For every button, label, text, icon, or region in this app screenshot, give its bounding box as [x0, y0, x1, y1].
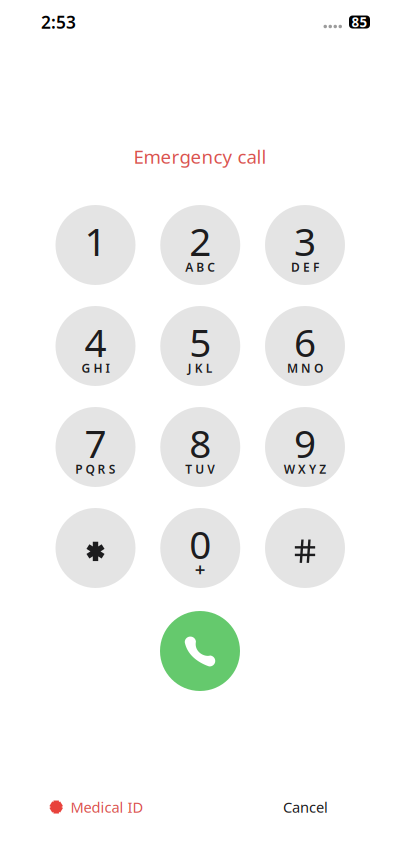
staticText: Q	[85, 461, 94, 477]
staticText: A	[185, 259, 193, 275]
button[interactable]: 7	[55, 407, 135, 487]
button[interactable]: Cancel	[283, 797, 328, 817]
button[interactable]: Medical ID	[50, 797, 143, 817]
staticText: F	[313, 259, 319, 275]
staticText: C	[207, 259, 215, 275]
staticText: T	[185, 461, 192, 477]
button[interactable]: 2	[160, 205, 240, 285]
staticText: 2	[189, 215, 211, 267]
staticText: 8	[189, 417, 211, 469]
staticText: W	[284, 461, 295, 477]
button[interactable]: 6	[265, 306, 345, 386]
button[interactable]: 5	[160, 306, 240, 386]
staticText: 3	[294, 215, 316, 267]
button[interactable]: 8	[160, 407, 240, 487]
staticText: Z	[319, 461, 326, 477]
staticText: R	[97, 461, 105, 477]
staticText: Cancel	[283, 797, 328, 817]
staticText: J	[188, 360, 192, 376]
button[interactable]: 3	[265, 205, 345, 285]
staticText: 6	[294, 316, 316, 368]
staticText: D	[291, 259, 300, 275]
staticText: S	[109, 461, 116, 477]
staticText: O	[314, 360, 323, 376]
staticText: L	[206, 360, 213, 376]
staticText: 5	[189, 316, 211, 368]
staticText: G	[81, 360, 90, 376]
staticText: E	[303, 259, 310, 275]
button[interactable]: 4	[55, 306, 135, 386]
staticText: K	[195, 360, 203, 376]
staticText: X	[298, 461, 306, 477]
staticText: Y	[309, 461, 316, 477]
button[interactable]: 0	[160, 508, 240, 588]
staticText: Medical ID	[70, 797, 143, 817]
staticText: Emergency call	[133, 144, 266, 169]
staticText: 9	[294, 417, 316, 469]
staticText: V	[207, 461, 215, 477]
button[interactable]: Pound	[265, 508, 345, 588]
staticText: U	[195, 461, 204, 477]
staticText: 4	[84, 316, 106, 368]
button[interactable]: Call	[160, 611, 240, 691]
button[interactable]: Star	[55, 508, 135, 588]
button[interactable]: 1	[55, 205, 135, 285]
staticText: 7	[84, 417, 106, 469]
staticText: M	[287, 360, 298, 376]
staticText: P	[75, 461, 82, 477]
button[interactable]: 9	[265, 407, 345, 487]
staticText: H	[93, 360, 102, 376]
staticText: 0	[189, 518, 211, 570]
staticText: I	[106, 360, 110, 376]
staticText: 1	[84, 215, 106, 267]
staticText: B	[196, 259, 204, 275]
staticText: N	[301, 360, 311, 376]
staticText: 2:53	[41, 10, 76, 33]
staticText: +	[195, 557, 206, 581]
staticText: 85	[351, 13, 367, 31]
